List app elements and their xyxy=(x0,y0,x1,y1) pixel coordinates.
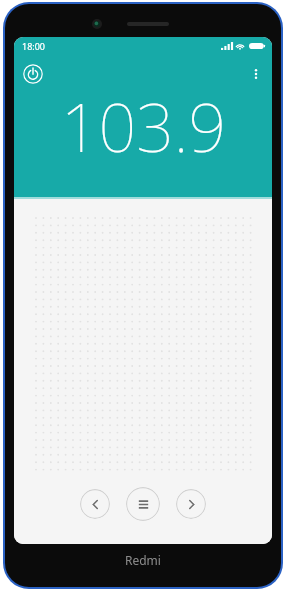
staticText: 18:00 xyxy=(22,40,46,52)
button[interactable]: Station list xyxy=(126,487,160,521)
button[interactable]: Next station xyxy=(176,489,206,519)
button[interactable]: Previous station xyxy=(80,489,110,519)
staticText: 103.9 xyxy=(61,81,226,171)
button[interactable]: More options xyxy=(243,61,269,87)
staticText: Redmi xyxy=(125,552,161,568)
button[interactable]: Power xyxy=(20,61,46,87)
